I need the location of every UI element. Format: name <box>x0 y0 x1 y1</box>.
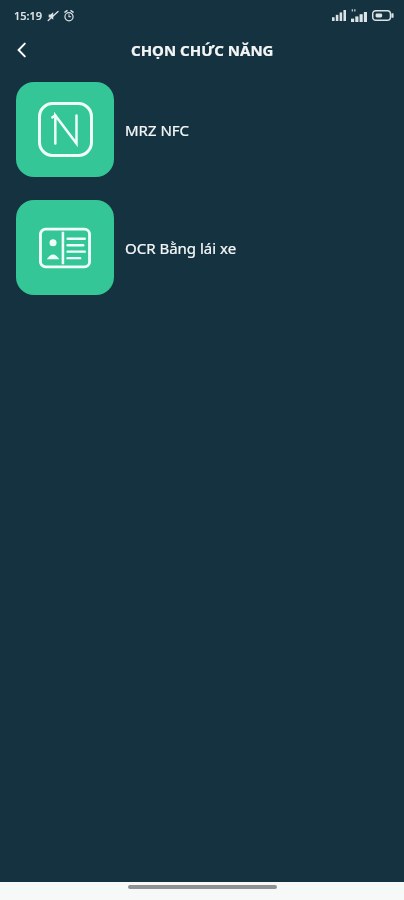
staticText: OCR Bằng lái xe <box>125 238 237 258</box>
staticText: 15:19 <box>14 8 43 23</box>
button[interactable]: MRZ NFC <box>0 82 404 177</box>
button[interactable]: Back <box>0 30 44 70</box>
staticText: CHỌN CHỨC NĂNG <box>131 40 274 60</box>
staticText: MRZ NFC <box>125 120 190 140</box>
button[interactable]: OCR Bằng lái xe <box>0 200 404 295</box>
